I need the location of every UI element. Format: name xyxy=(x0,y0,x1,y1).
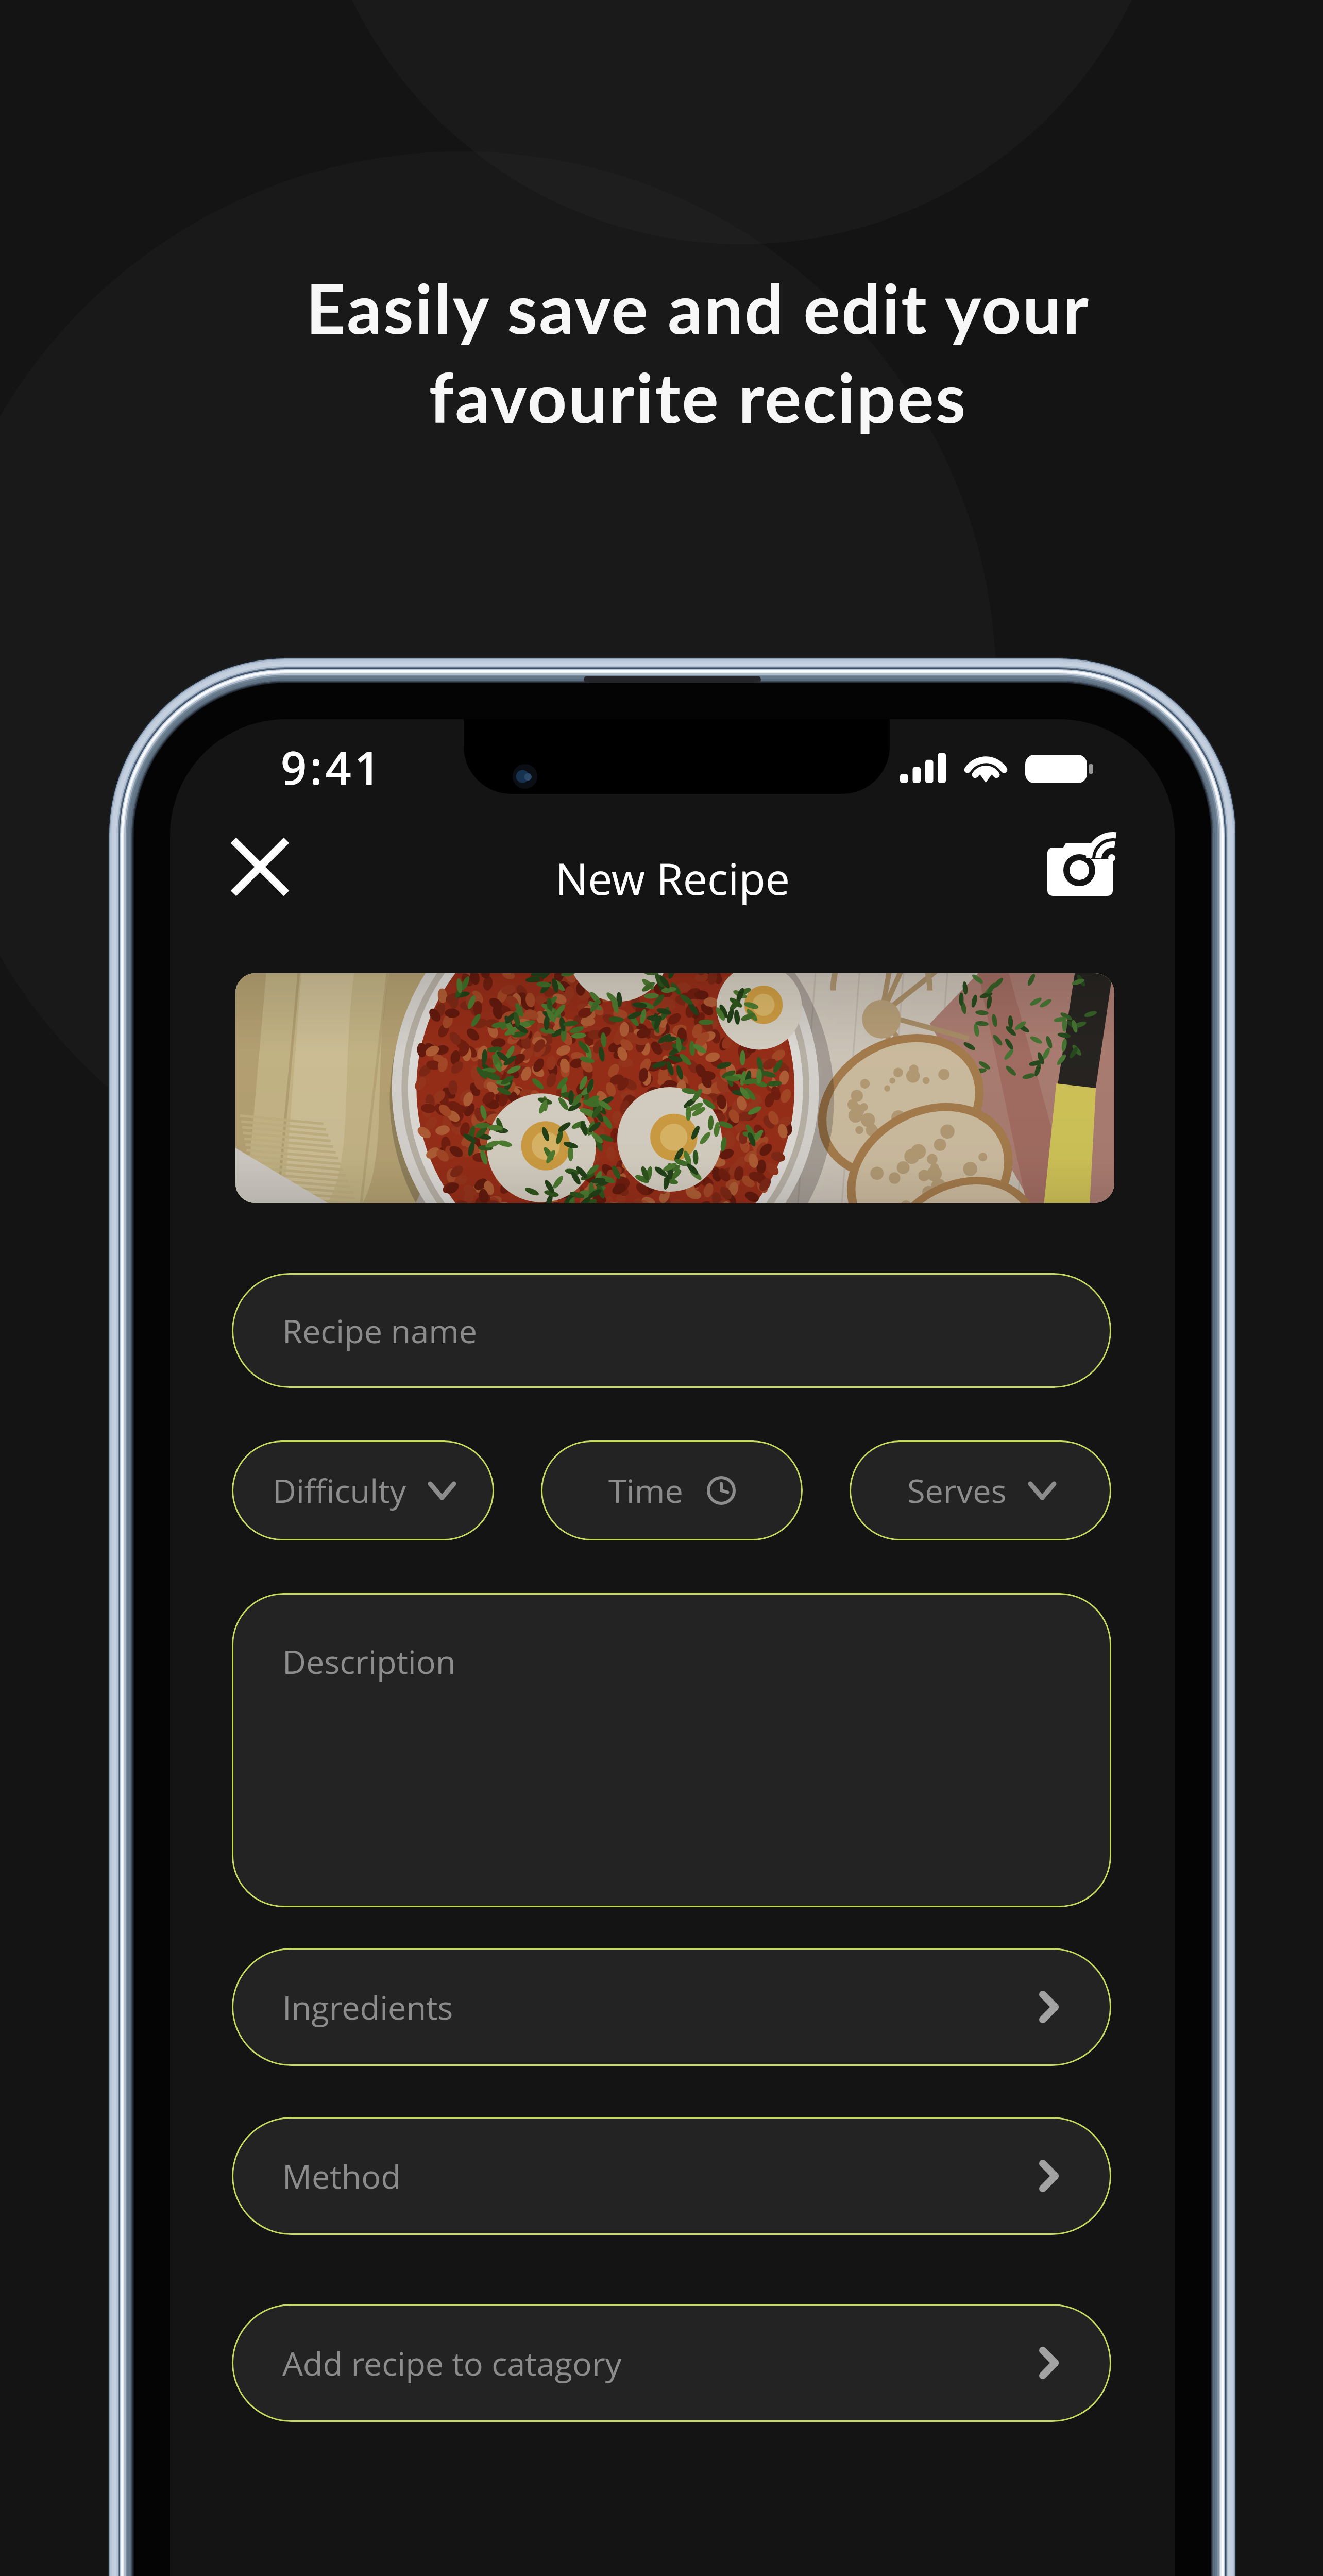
button[interactable]: Add photo xyxy=(1032,821,1128,911)
staticText: Add recipe to catagory xyxy=(282,2341,622,2385)
staticText: Ingredients xyxy=(282,1985,453,2029)
button[interactable]: Description xyxy=(232,1593,1111,1907)
button[interactable]: Ingredients xyxy=(232,1948,1111,2066)
staticText: New Recipe xyxy=(555,849,790,907)
staticText: Description xyxy=(282,1639,456,1684)
staticText: 9:41 xyxy=(281,736,383,798)
button[interactable]: Serves xyxy=(850,1440,1111,1540)
button[interactable]: Time xyxy=(541,1440,803,1540)
staticText: Time xyxy=(608,1468,683,1513)
staticText: Difficulty xyxy=(273,1468,406,1513)
staticText: Method xyxy=(282,2154,401,2198)
staticText: Recipe name xyxy=(282,1309,478,1353)
button[interactable]: Recipe name xyxy=(232,1273,1111,1388)
staticText: Easily save and edit your favourite reci… xyxy=(306,266,1090,438)
button[interactable]: Method xyxy=(232,2117,1111,2235)
button[interactable]: Add recipe to catagory xyxy=(232,2304,1111,2422)
staticText: Serves xyxy=(907,1468,1007,1513)
button[interactable]: Close xyxy=(218,825,302,909)
button[interactable]: Difficulty xyxy=(232,1440,494,1540)
